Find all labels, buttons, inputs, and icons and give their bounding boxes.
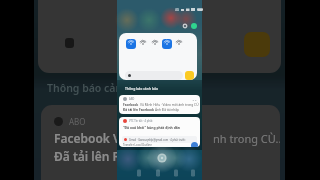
button[interactable]: Wi-Fi <box>126 39 136 49</box>
staticText: nh trong CÙ.. <box>213 131 280 146</box>
button[interactable]: Settings <box>182 23 188 29</box>
staticText: Đã tải lên Face <box>54 148 140 164</box>
staticText: Facebook Vũ M <box>54 130 143 146</box>
button[interactable]: Account <box>191 23 197 29</box>
staticText: ABO <box>69 116 86 127</box>
button[interactable]: Flashlight <box>174 39 184 49</box>
other: Expand <box>192 98 197 103</box>
staticText: "Đã xoá khỏi" bùng phát định dân <box>123 125 181 130</box>
button[interactable]: Brightness <box>125 71 183 80</box>
button[interactable]: Rotate <box>150 39 160 49</box>
staticText: Transfer Local Outline <box>123 143 152 147</box>
staticText: Ảnh Đã tải nhập <box>155 108 180 112</box>
button[interactable]: ABO <box>119 95 200 114</box>
staticText: Đã tải lên Facebook <box>123 108 155 112</box>
staticText: Thông báo cảnh <box>47 81 129 95</box>
staticText: 4G <box>175 8 179 12</box>
button[interactable]: Bluetooth <box>162 39 172 49</box>
staticText: VTC Tin tức · 4 phút <box>129 119 153 123</box>
staticText: ABO <box>129 97 135 101</box>
button[interactable]: Reply <box>191 142 198 147</box>
staticText: Vũ Minh Hiếu · Video mới ảnh trong CÙ <box>140 103 199 107</box>
staticText: Gmail · Ganxuqnhlp@gmail.com · 4 phút tr… <box>129 138 186 142</box>
staticText: Facebook <box>123 103 140 107</box>
button[interactable]: Sound <box>138 39 148 49</box>
button[interactable]: VTC Tin tức · 4 phút <box>119 117 200 147</box>
button[interactable]: Auto brightness <box>185 71 194 80</box>
staticText: Thông báo cảnh báo <box>125 86 159 91</box>
